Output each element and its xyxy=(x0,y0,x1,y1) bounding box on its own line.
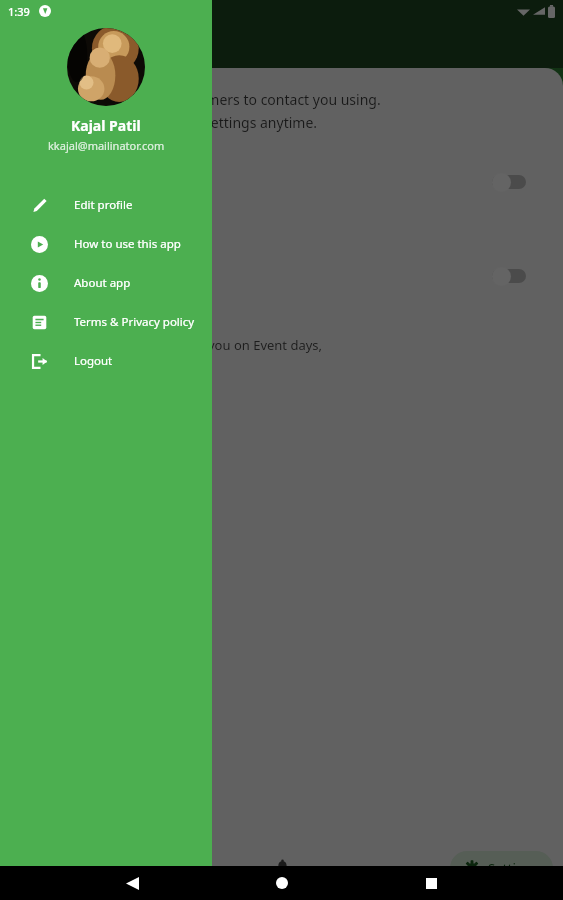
button[interactable]: About app xyxy=(0,263,212,302)
staticText: kkajal@mailinator.com xyxy=(48,138,165,153)
staticText: 1:39 xyxy=(8,4,30,19)
staticText: read more about that. xyxy=(18,354,153,372)
staticText: How to use this app xyxy=(74,236,181,252)
button[interactable]: Edit profile xyxy=(0,185,212,224)
button[interactable]: Phone calls xyxy=(0,160,563,204)
staticText: Terms & Privacy policy xyxy=(74,314,195,330)
staticText: Select the ways you allow farmers to con… xyxy=(18,90,381,109)
staticText: Kajal Patil xyxy=(71,116,141,135)
button[interactable]: How to use this app xyxy=(0,224,212,263)
staticText: Messages xyxy=(18,267,84,286)
staticText: About app xyxy=(74,275,131,291)
staticText: Note: you can change these settings anyt… xyxy=(18,113,318,132)
button[interactable]: Profile photo xyxy=(67,28,145,106)
staticText: Edit profile xyxy=(74,197,133,213)
staticText: Logout xyxy=(74,353,113,369)
staticText: Settings xyxy=(488,859,539,877)
button[interactable]: Recent apps xyxy=(413,866,449,900)
button[interactable]: Messages xyxy=(0,254,563,298)
button[interactable]: Settings xyxy=(450,851,553,885)
button[interactable]: Home xyxy=(264,866,300,900)
button[interactable]: Logout xyxy=(0,341,212,380)
button[interactable]: Back xyxy=(114,866,150,900)
button[interactable]: Notifications xyxy=(258,844,306,892)
button[interactable]: Terms & Privacy policy xyxy=(0,302,212,341)
staticText: Farmers will be able to contact you on E… xyxy=(18,336,323,354)
